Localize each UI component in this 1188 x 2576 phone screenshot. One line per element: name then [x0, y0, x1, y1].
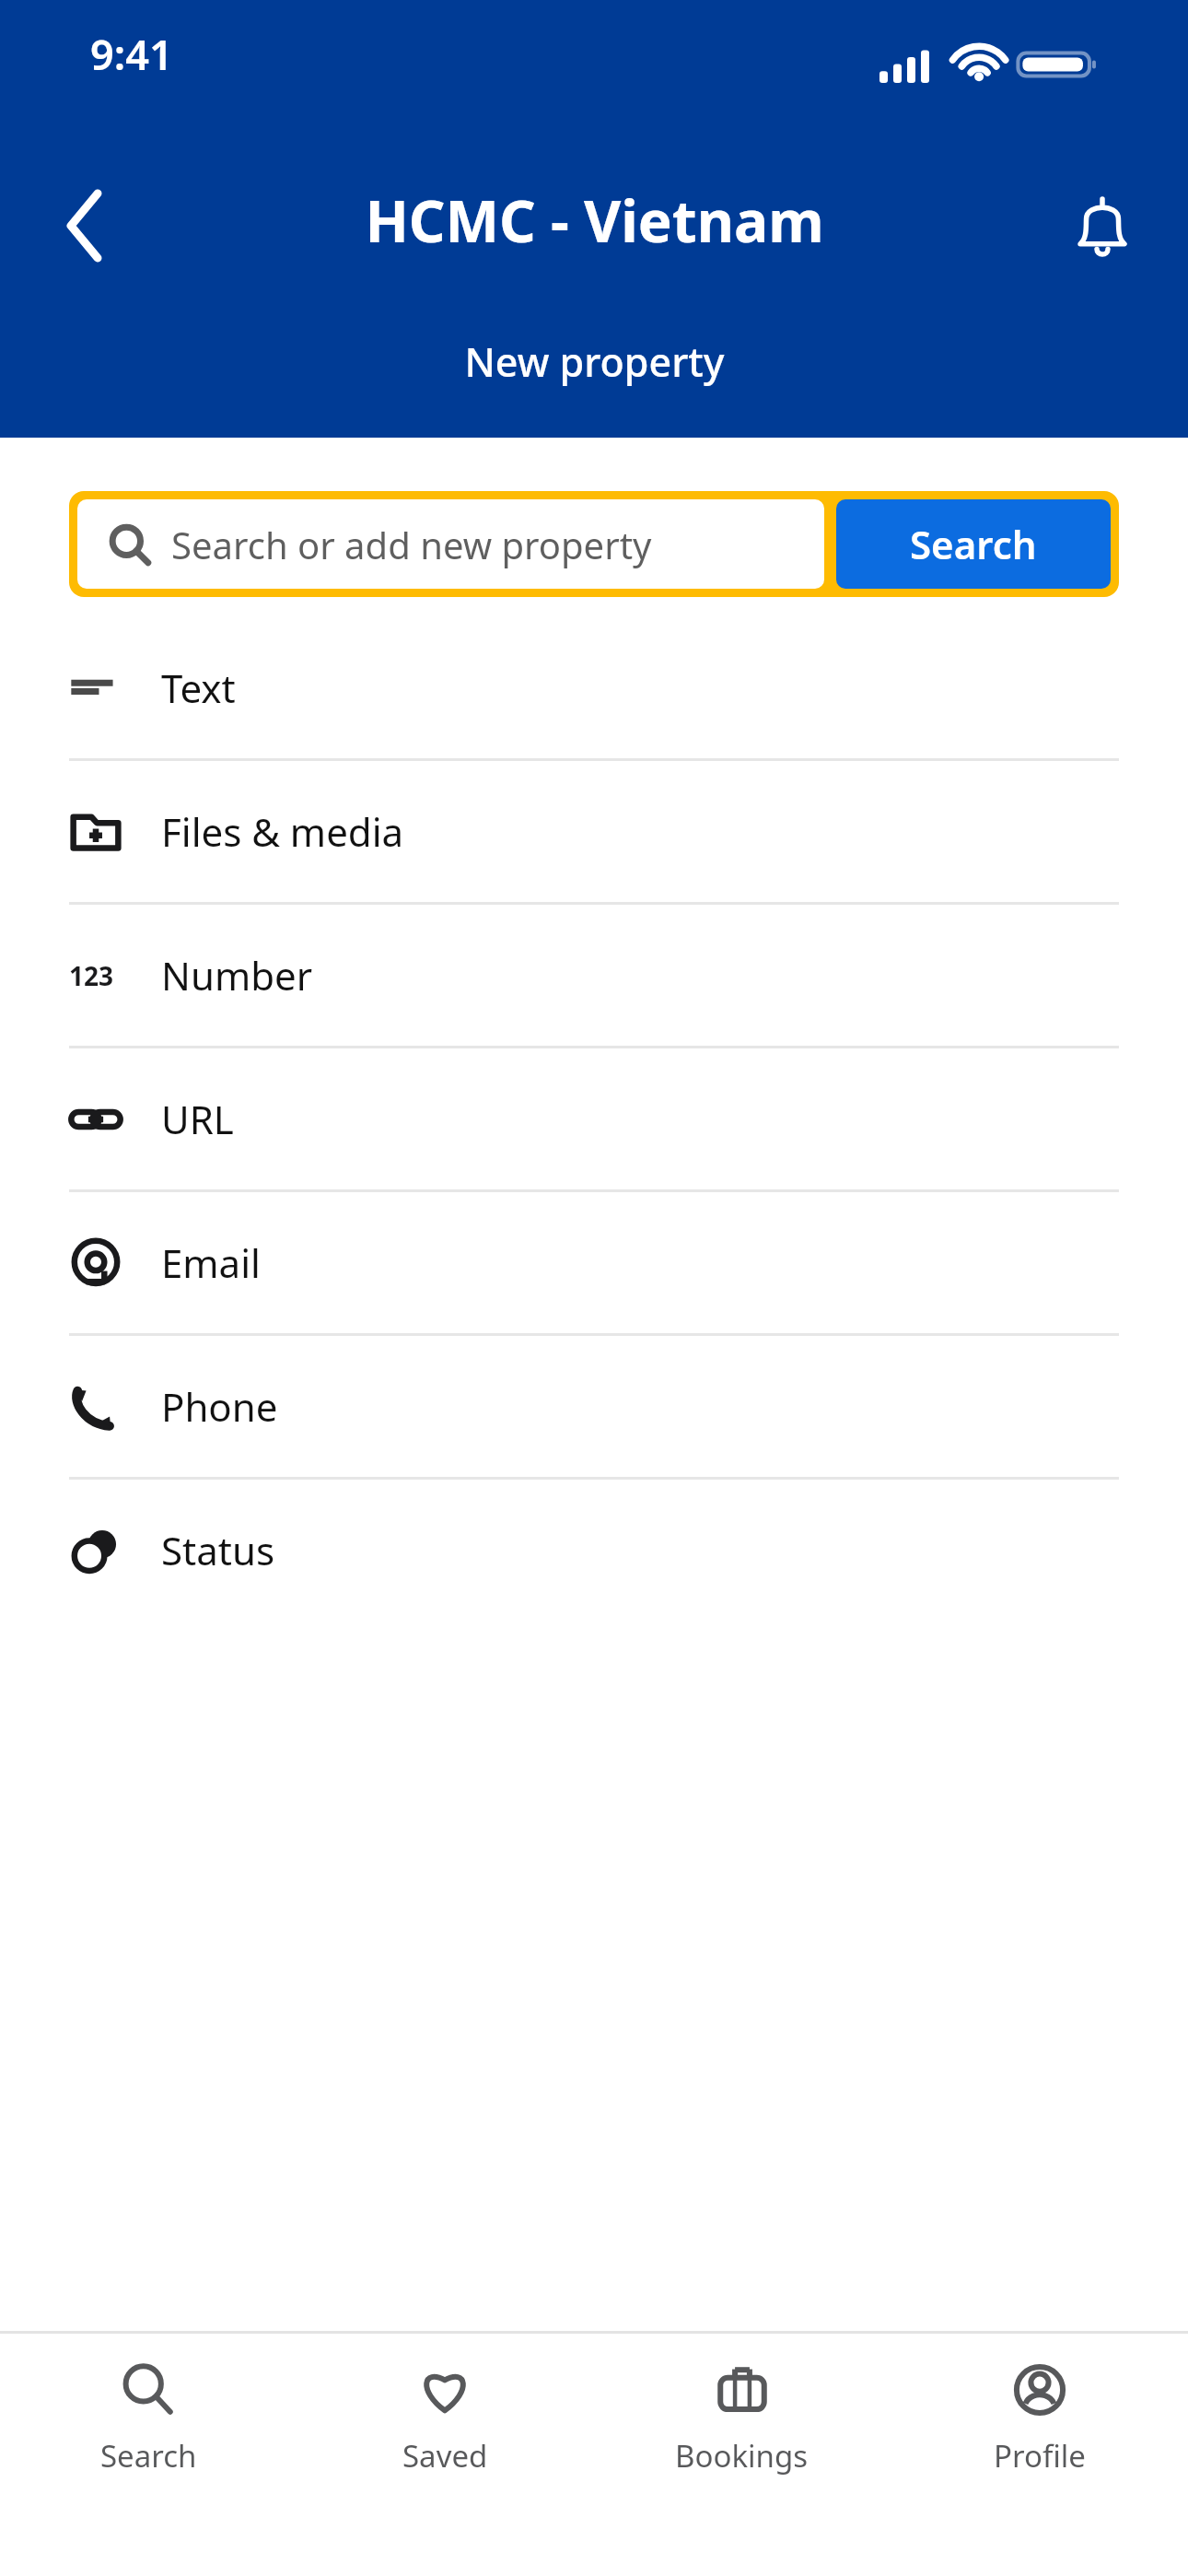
- staticText: Search: [910, 518, 1037, 570]
- staticText: Status: [161, 1524, 275, 1576]
- staticText: URL: [161, 1093, 234, 1145]
- staticText: New property: [464, 334, 725, 389]
- staticText: Saved: [402, 2435, 488, 2476]
- button[interactable]: Phone: [0, 1336, 1188, 1477]
- staticText: Search or add new property: [171, 520, 652, 569]
- button[interactable]: 123: [0, 905, 1188, 1046]
- button[interactable]: Status: [0, 1480, 1188, 1621]
- staticText: Files & media: [161, 805, 404, 858]
- button[interactable]: Saved: [297, 2334, 593, 2576]
- button[interactable]: Notifications: [1052, 175, 1153, 276]
- button[interactable]: Back: [37, 175, 138, 276]
- staticText: Bookings: [675, 2435, 809, 2476]
- button[interactable]: Text: [0, 617, 1188, 758]
- staticText: 9:41: [90, 26, 173, 82]
- button[interactable]: URL: [0, 1048, 1188, 1189]
- button[interactable]: Profile: [891, 2334, 1188, 2576]
- button[interactable]: Bookings: [593, 2334, 891, 2576]
- staticText: HCMC - Vietnam: [365, 181, 824, 259]
- staticText: Email: [161, 1236, 261, 1289]
- button[interactable]: Files & media: [0, 761, 1188, 902]
- staticText: Number: [161, 949, 313, 1001]
- button[interactable]: Search: [0, 2334, 297, 2576]
- button[interactable]: Email: [0, 1192, 1188, 1333]
- button[interactable]: Search or add new property: [77, 499, 824, 589]
- staticText: 123: [69, 958, 114, 993]
- staticText: Text: [161, 662, 236, 714]
- button[interactable]: Search: [836, 499, 1111, 589]
- staticText: Search: [100, 2435, 197, 2476]
- staticText: Profile: [994, 2435, 1086, 2476]
- staticText: Phone: [161, 1380, 278, 1433]
